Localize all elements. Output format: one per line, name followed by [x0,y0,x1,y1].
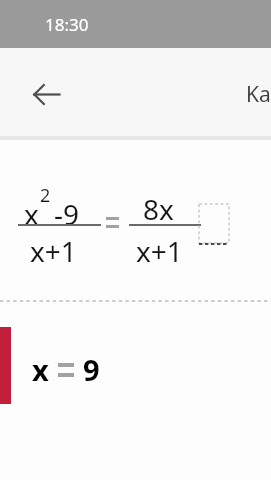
staticText: x [24,195,39,233]
staticText: 9 [83,350,100,389]
staticText: 8x [143,190,174,228]
staticText: x+1 [136,232,183,270]
staticText: x+1 [30,232,77,270]
staticText: x [32,350,49,389]
staticText: -9 [54,195,80,233]
staticText: 18:30 [45,13,89,36]
staticText: 2 [40,183,51,208]
staticText: Ka [246,80,271,109]
button[interactable]: x [0,302,271,406]
button[interactable]: Back [22,70,70,118]
